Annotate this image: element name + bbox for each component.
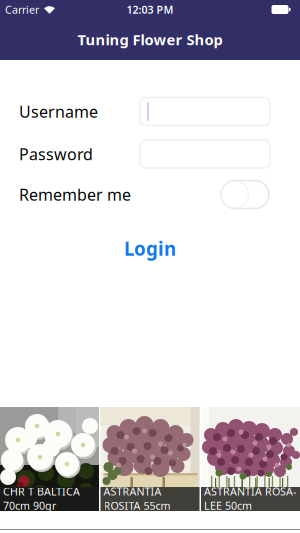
staticText: 12:03 PM: [126, 2, 173, 17]
staticText: Login: [124, 236, 176, 261]
staticText: Remember me: [19, 184, 131, 205]
staticText: LEE 50cm: [204, 498, 252, 513]
button[interactable]: Remember me: [221, 180, 269, 208]
staticText: Password: [19, 143, 93, 165]
staticText: ASTRANTIA: [103, 484, 161, 498]
staticText: 70cm 90gr: [3, 498, 56, 513]
button[interactable]: CHR T BALTICA: [0, 407, 99, 511]
button[interactable]: Login: [124, 236, 176, 261]
button[interactable]: ASTRANTIA: [100, 407, 199, 511]
button[interactable]: ASTRANTIA ROSA-: [201, 407, 300, 511]
staticText: ASTRANTIA ROSA-: [204, 484, 296, 498]
staticText: ROSITA 55cm: [103, 498, 170, 513]
staticText: Username: [19, 101, 98, 122]
staticText: CHR T BALTICA: [3, 484, 80, 498]
staticText: Carrier: [5, 2, 39, 17]
staticText: Tuning Flower Shop: [77, 30, 222, 49]
button[interactable]: Username: [140, 97, 270, 125]
button[interactable]: Password: [140, 140, 270, 168]
